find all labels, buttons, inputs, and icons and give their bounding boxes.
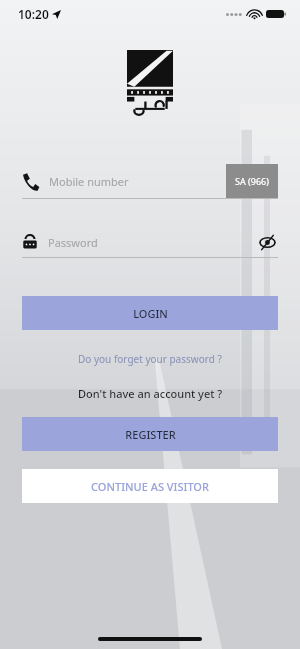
staticText: REGISTER [125, 427, 176, 442]
staticText: Do you forget your password ? [78, 352, 222, 366]
button[interactable]: Mobile number [22, 164, 278, 199]
button[interactable]: REGISTER [22, 417, 278, 451]
staticText: CONTINUE AS VISITOR [91, 479, 209, 494]
button[interactable]: Do you forget your password ? [0, 352, 300, 366]
button[interactable]: Show password [256, 231, 278, 253]
staticText: Mobile number [49, 174, 129, 189]
button[interactable]: Password [22, 227, 278, 258]
staticText: SA (966) [235, 175, 269, 187]
staticText: 10:20 [18, 6, 49, 22]
button[interactable]: LOGIN [22, 296, 278, 330]
button[interactable]: SA (966) [226, 164, 278, 198]
staticText: LOGIN [133, 306, 168, 321]
staticText: Password [48, 235, 98, 250]
button[interactable]: CONTINUE AS VISITOR [22, 469, 278, 503]
staticText: Don't have an account yet ? [78, 386, 223, 401]
